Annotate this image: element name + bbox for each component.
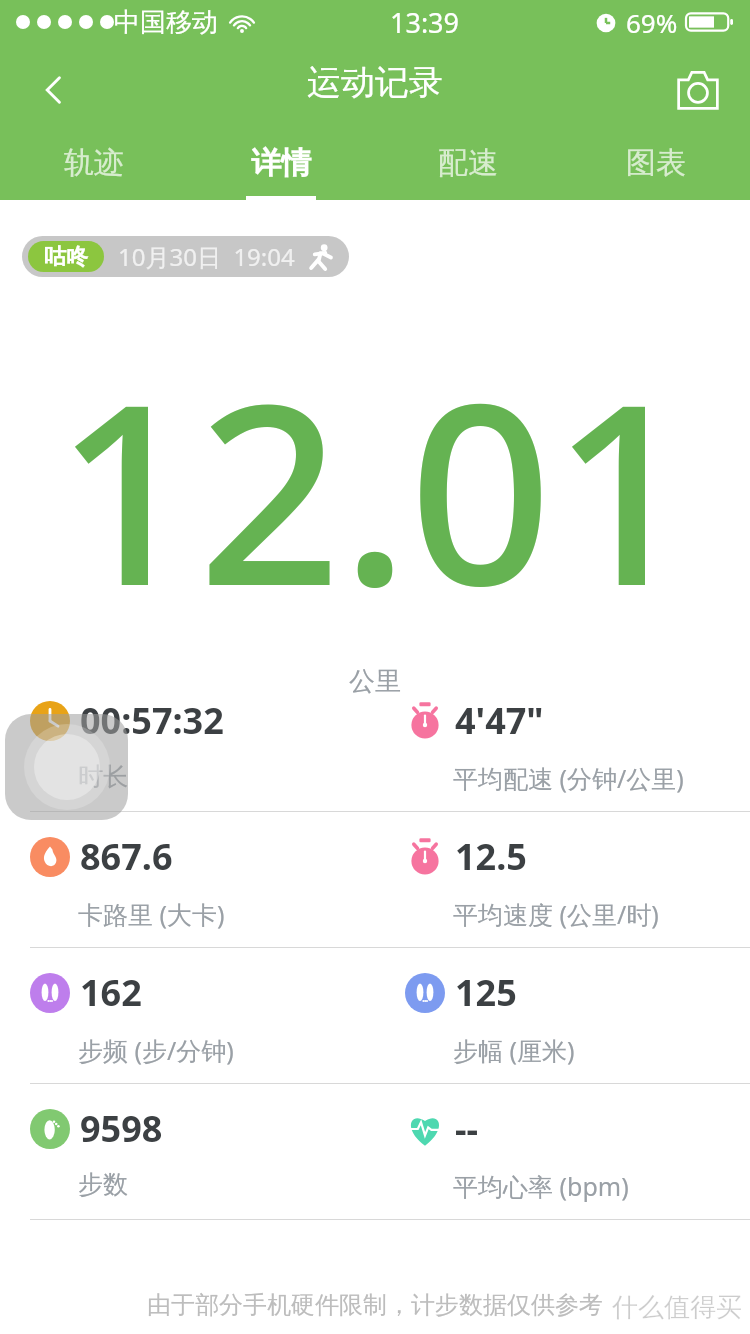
staticText: 125 (455, 968, 517, 1017)
staticText: 公里 (349, 665, 401, 698)
staticText: 时长 (78, 761, 128, 792)
staticText: 什么值得买 (612, 1291, 742, 1324)
button[interactable]: 12.5 (375, 812, 750, 947)
staticText: 867.6 (80, 832, 173, 881)
staticText: 12.01 (55, 318, 695, 659)
button[interactable]: 咕咚 (22, 236, 349, 277)
button[interactable]: -- (375, 1084, 750, 1219)
button[interactable]: Back (20, 56, 88, 124)
button[interactable]: 00:57:32 (0, 676, 375, 811)
staticText: 12.5 (455, 832, 527, 881)
button[interactable]: 867.6 (0, 812, 375, 947)
button[interactable]: 9598 (0, 1084, 375, 1219)
button[interactable]: 125 (375, 948, 750, 1083)
staticText: 步频 (步/分钟) (78, 1033, 234, 1067)
staticText: 步数 (78, 1169, 128, 1200)
button[interactable]: 轨迹 (0, 140, 187, 201)
button[interactable]: 4'47" (375, 676, 750, 811)
staticText: 10月30日 19:04 (118, 240, 295, 273)
staticText: 图表 (626, 144, 686, 182)
staticText: 4'47" (455, 696, 544, 745)
button[interactable]: 详情 (187, 140, 374, 201)
staticText: 13:39 (390, 4, 460, 41)
staticText: 中国移动 (114, 6, 218, 39)
staticText: 步幅 (厘米) (453, 1033, 575, 1067)
button[interactable]: 图表 (562, 140, 750, 201)
button[interactable]: 162 (0, 948, 375, 1083)
staticText: 配速 (438, 144, 498, 182)
staticText: 卡路里 (大卡) (78, 897, 225, 931)
staticText: 162 (80, 968, 142, 1017)
staticText: 咕咚 (44, 243, 88, 271)
staticText: 69% (626, 5, 678, 40)
staticText: -- (455, 1104, 479, 1153)
staticText: 轨迹 (64, 144, 124, 182)
staticText: 9598 (80, 1104, 163, 1153)
staticText: 详情 (251, 144, 311, 182)
staticText: 平均速度 (公里/时) (453, 897, 659, 931)
button[interactable]: Camera (660, 52, 736, 128)
staticText: 运动记录 (307, 61, 443, 104)
staticText: 平均配速 (分钟/公里) (453, 761, 684, 795)
staticText: 平均心率 (bpm) (453, 1169, 629, 1203)
button[interactable]: 配速 (374, 140, 562, 201)
staticText: 由于部分手机硬件限制，计步数据仅供参考 (147, 1290, 603, 1320)
staticText: 00:57:32 (80, 696, 224, 745)
